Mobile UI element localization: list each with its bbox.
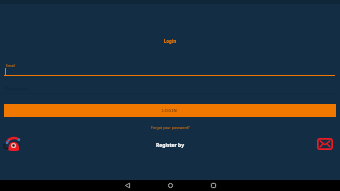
button[interactable]: Home [165, 180, 176, 191]
button[interactable]: Forgot your password? [149, 124, 192, 131]
button[interactable]: Register by email [317, 138, 333, 150]
staticText: Register by [156, 142, 185, 149]
staticText: Login [0, 38, 340, 44]
button[interactable]: Recent apps [208, 180, 219, 191]
button[interactable]: Register by phone [4, 135, 21, 152]
staticText: LOGIN [162, 108, 178, 114]
button[interactable]: LOGIN [4, 104, 336, 117]
staticText: Email [6, 63, 15, 68]
button[interactable]: Back [122, 180, 133, 191]
